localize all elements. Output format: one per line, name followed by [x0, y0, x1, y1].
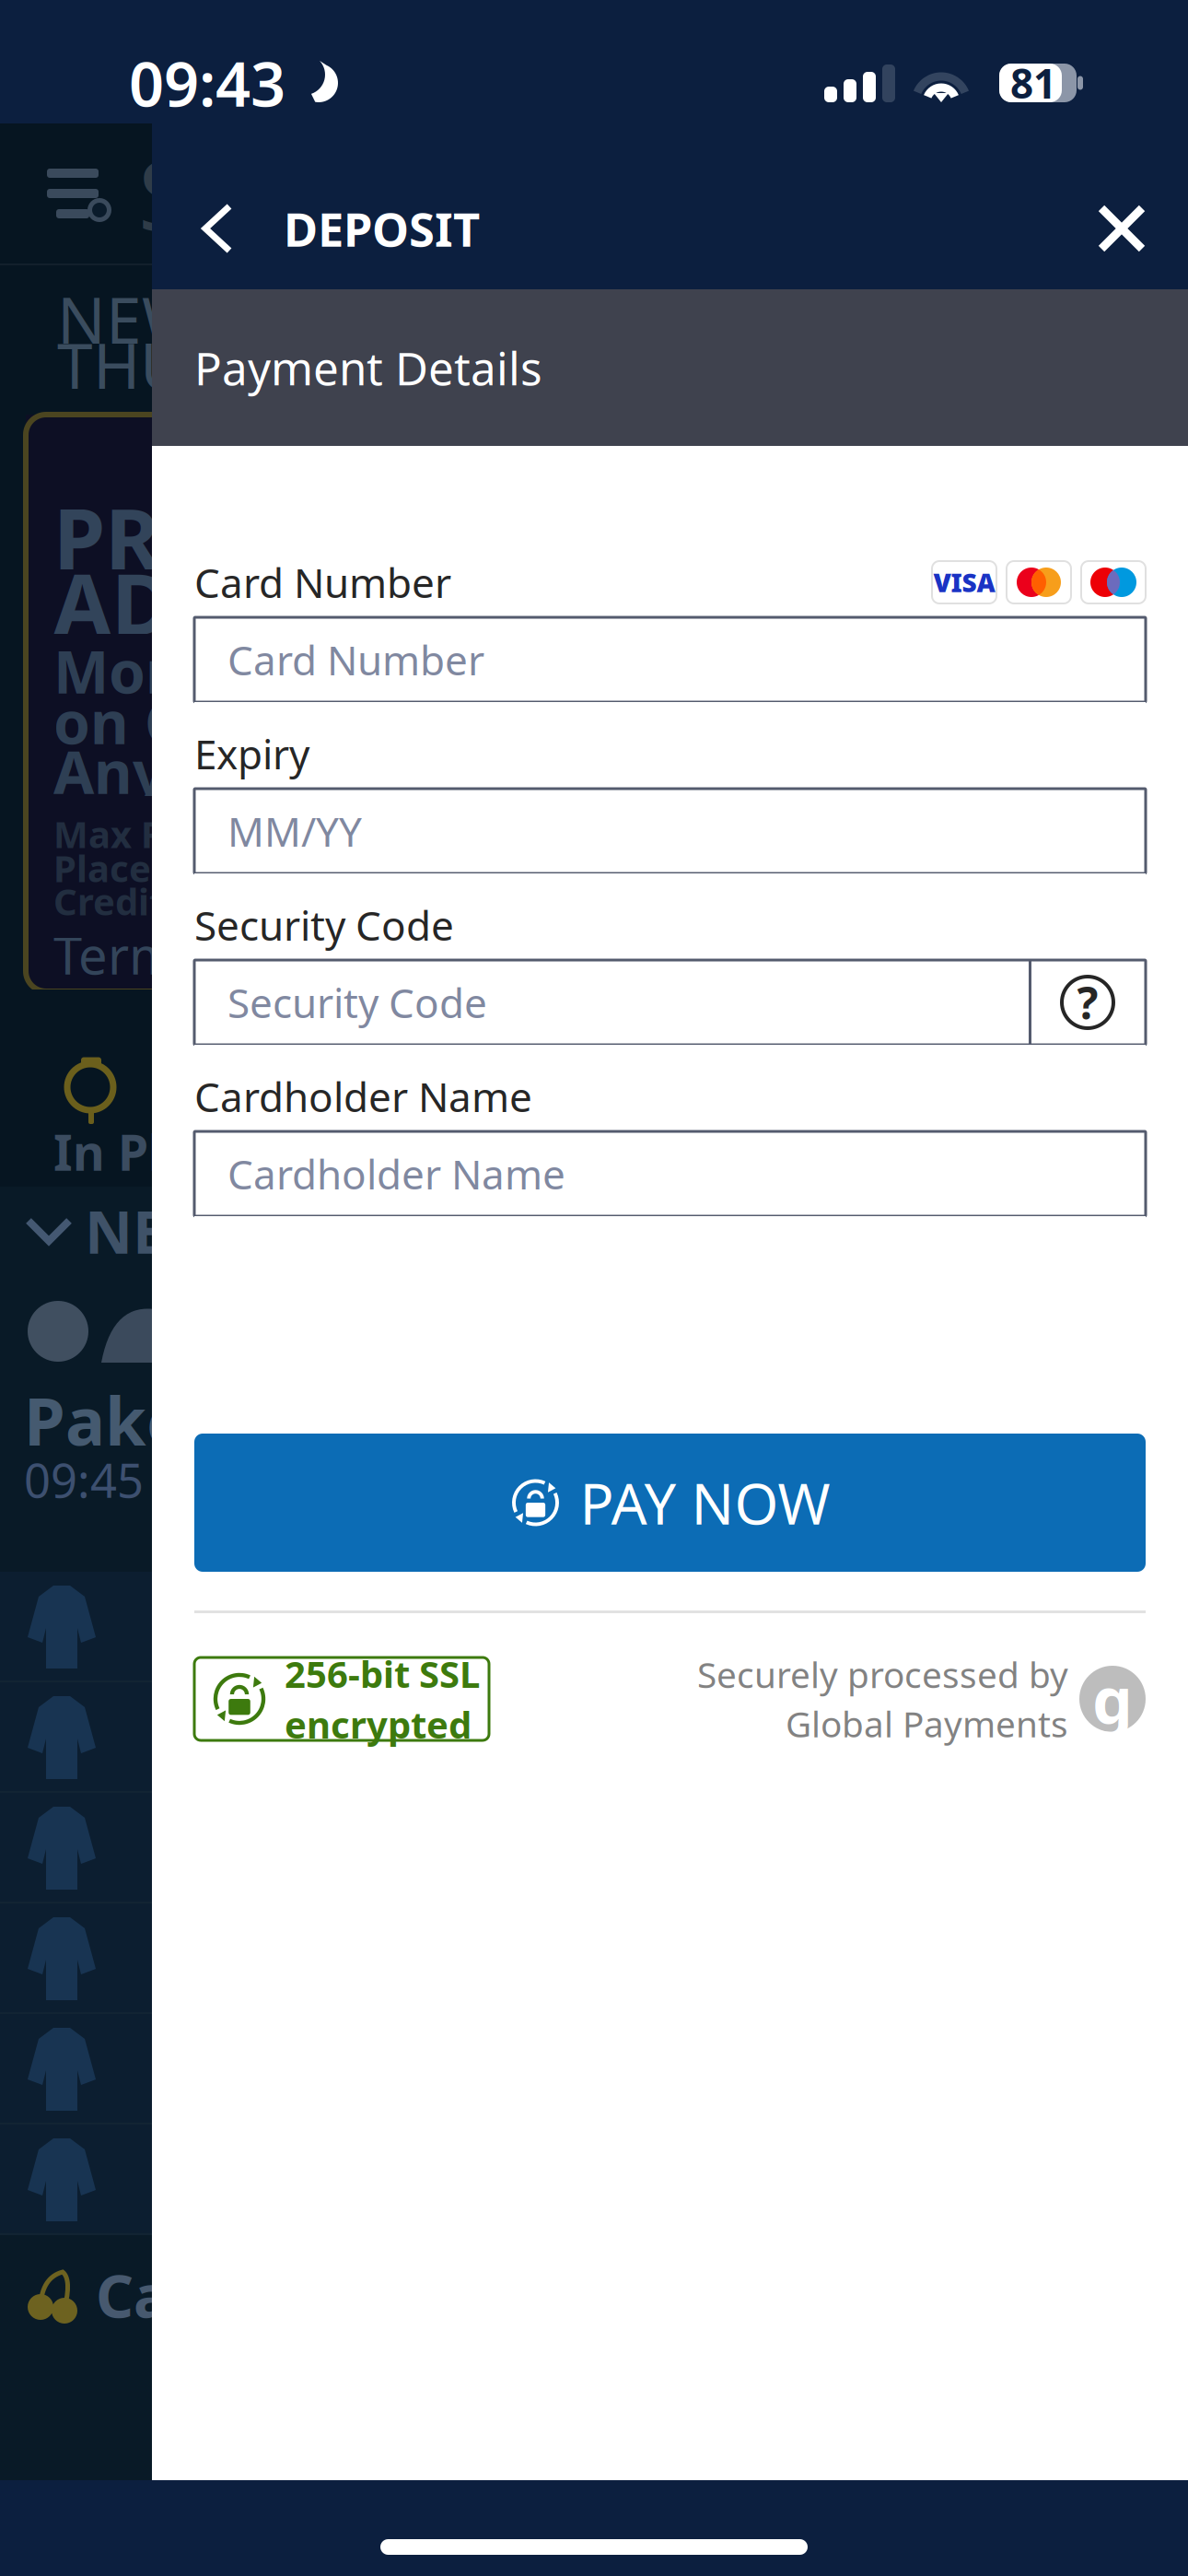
button[interactable]: Security code help [1030, 960, 1146, 1045]
button[interactable]: 256-bit SSL encrypted [194, 1657, 489, 1740]
staticText: THUR [57, 322, 227, 407]
staticText: encrypted [285, 1700, 472, 1749]
staticText: 81 [1010, 56, 1056, 110]
staticText: Terms an [53, 920, 276, 989]
staticText: Placed p [53, 843, 206, 892]
button[interactable]: Visa accepted [932, 561, 996, 603]
staticText: PAY NOW [580, 1465, 830, 1540]
staticText: PRE [53, 482, 206, 593]
staticText: g [1092, 1657, 1133, 1741]
staticText: Credited [53, 877, 210, 925]
staticText: MM/YY [227, 804, 362, 858]
staticText: Cardholder Name [227, 1147, 565, 1201]
staticText: Cardholder Name [194, 1069, 532, 1123]
staticText: NEX [85, 1192, 205, 1270]
staticText: NEW [57, 276, 201, 361]
staticText: Anyti [53, 732, 210, 810]
staticText: Expiry [194, 727, 309, 781]
staticText: Card Number [194, 555, 451, 609]
staticText: Mone [53, 632, 219, 710]
staticText: Securely processed by [697, 1651, 1068, 1698]
staticText: In Play [53, 1119, 220, 1184]
staticText: 256-bit SSL [285, 1649, 480, 1698]
staticText: on Co [53, 682, 219, 761]
staticText: 09:43 [129, 42, 285, 124]
button[interactable]: Mastercard accepted [1007, 561, 1071, 603]
button[interactable]: Maestro accepted [1081, 561, 1146, 603]
staticText: Payment Details [194, 337, 542, 398]
button[interactable]: Close [1070, 157, 1188, 289]
staticText: S [138, 130, 191, 257]
staticText: Security Code [227, 975, 487, 1029]
staticText: Sports [220, 2437, 361, 2499]
staticText: VISA [933, 565, 995, 599]
staticText: ADD [53, 547, 233, 658]
staticText: Card Number [227, 633, 484, 687]
staticText: ? [1077, 973, 1098, 1032]
staticText: Global Payments [786, 1700, 1068, 1747]
staticText: Security Code [194, 898, 454, 952]
staticText: 09:45 [24, 1449, 144, 1511]
staticText: Max Ref [53, 809, 201, 858]
staticText: Cas [96, 2256, 198, 2334]
button[interactable]: Back [152, 157, 256, 289]
button[interactable]: PAY NOW [194, 1434, 1146, 1572]
staticText: Pakenh [24, 1376, 273, 1464]
staticText: DEPOSIT [284, 198, 480, 260]
